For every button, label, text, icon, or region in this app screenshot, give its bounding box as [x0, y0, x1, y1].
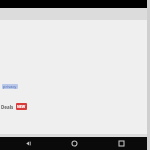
button[interactable]: Home [68, 137, 81, 150]
button[interactable]: privacy [2, 84, 18, 89]
staticText: privacy [3, 84, 17, 89]
staticText: Deals [1, 104, 14, 110]
staticText: NEW [17, 104, 26, 109]
button[interactable]: Recent apps [115, 137, 128, 150]
button[interactable]: Back [22, 137, 35, 150]
button[interactable]: Deals [1, 103, 27, 110]
